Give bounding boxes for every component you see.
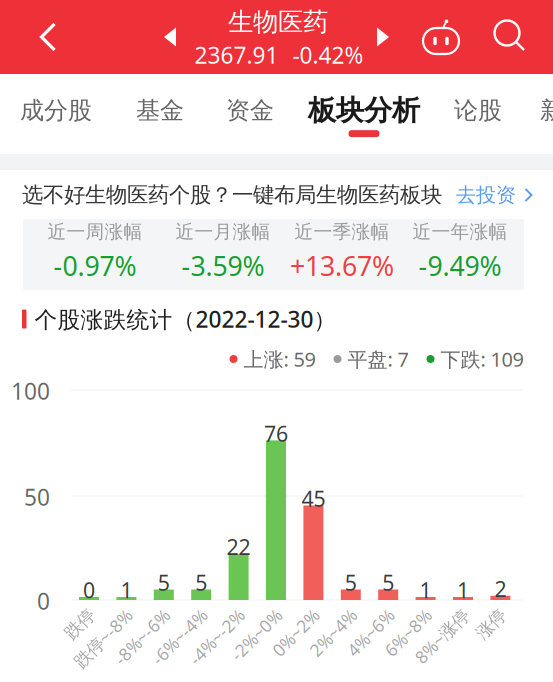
staticText: 1	[457, 575, 469, 605]
button[interactable]: 基金	[100, 84, 220, 146]
staticText: -0.97%	[53, 248, 136, 284]
staticText: 22	[227, 532, 251, 561]
staticText: 5	[382, 568, 394, 597]
staticText: 1	[420, 575, 432, 605]
staticText: 新	[540, 95, 553, 126]
staticText: 1	[120, 575, 132, 605]
staticText: 2	[494, 574, 506, 603]
staticText: 76	[264, 419, 288, 448]
staticText: 资金	[226, 95, 274, 126]
staticText: -6%~-4%	[147, 632, 217, 656]
staticText: 8%~涨停	[411, 632, 479, 656]
staticText: 4%~6%	[346, 632, 404, 656]
staticText: 近一年涨幅	[412, 220, 507, 244]
staticText: -3.59%	[181, 248, 264, 284]
staticText: -8%~-6%	[110, 632, 180, 656]
staticText: 近一季涨幅	[294, 220, 389, 244]
staticText: 近一月涨幅	[175, 220, 270, 244]
staticText: 0	[37, 586, 50, 616]
staticText: 近一周涨幅	[47, 220, 142, 244]
staticText: -4%~-2%	[185, 632, 255, 656]
staticText: 上涨: 59	[243, 345, 315, 373]
staticText: 跌停	[71, 633, 105, 655]
staticText: -0.42%	[292, 40, 363, 70]
button[interactable]: Previous sector	[150, 12, 190, 62]
staticText: 板块分析	[308, 93, 420, 128]
button[interactable]: Back	[17, 0, 79, 74]
staticText: 100	[11, 376, 50, 406]
staticText: 去投资	[456, 182, 516, 208]
staticText: 跌停~-8%	[68, 632, 142, 656]
staticText: 5	[158, 568, 170, 597]
staticText: 2%~4%	[309, 632, 367, 656]
staticText: 论股	[454, 95, 502, 126]
button[interactable]: Search	[483, 0, 537, 73]
button[interactable]: 选不好生物医药个股？一键布局生物医药板块	[0, 170, 553, 219]
button[interactable]: 成分股	[0, 84, 116, 146]
staticText: 2367.91	[194, 40, 278, 70]
staticText: 5	[345, 568, 357, 597]
button[interactable]: 论股	[418, 84, 538, 146]
staticText: 0%~2%	[271, 632, 329, 656]
staticText: 6%~8%	[384, 632, 442, 656]
staticText: 0	[83, 575, 95, 605]
button[interactable]: 新	[492, 84, 553, 146]
button[interactable]: Next sector	[363, 12, 403, 62]
staticText: 50	[24, 482, 50, 512]
staticText: 选不好生物医药个股？一键布局生物医药板块	[22, 182, 442, 208]
staticText: 涨停	[482, 633, 516, 655]
staticText: 基金	[136, 95, 184, 126]
staticText: 个股涨跌统计（2022-12-30）	[34, 304, 336, 334]
staticText: +13.67%	[290, 248, 394, 284]
staticText: 生物医药	[228, 6, 328, 38]
button[interactable]: AI assistant	[414, 0, 468, 74]
button[interactable]: 资金	[190, 84, 310, 146]
staticText: 平盘: 7	[347, 345, 408, 373]
staticText: 45	[301, 484, 325, 513]
staticText: 5	[195, 568, 207, 597]
staticText: 成分股	[20, 95, 92, 126]
staticText: 下跌: 109	[440, 345, 523, 373]
button[interactable]: 板块分析	[304, 84, 424, 146]
staticText: -9.49%	[418, 248, 501, 284]
staticText: -2%~0%	[228, 632, 292, 656]
